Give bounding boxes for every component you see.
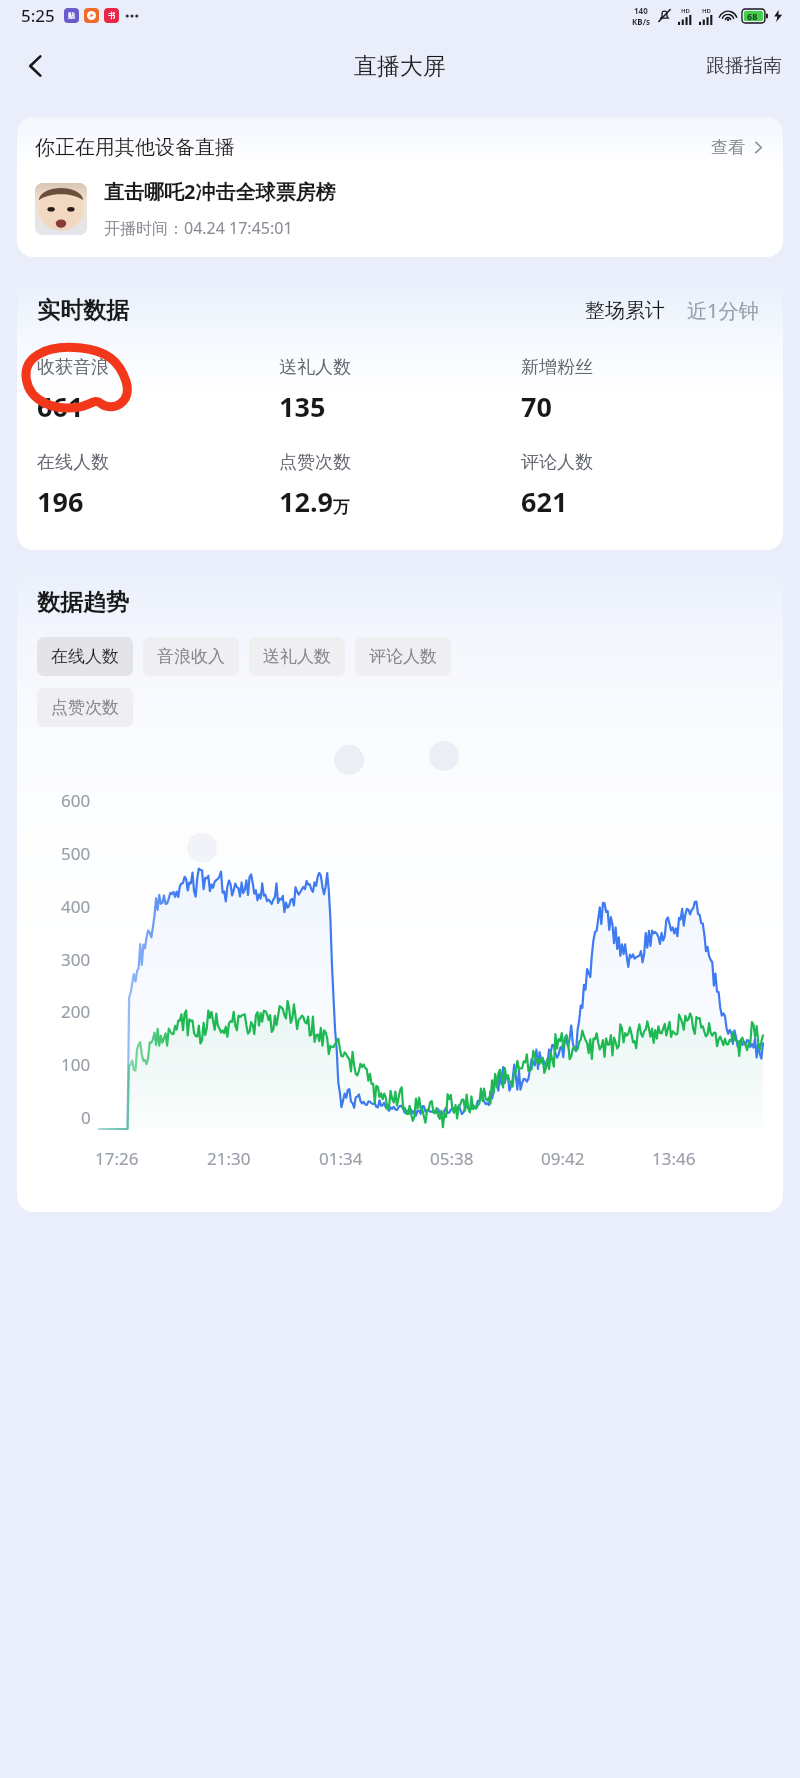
- staticText: 17:26: [95, 1147, 139, 1170]
- staticText: 送礼人数: [279, 356, 351, 379]
- button[interactable]: 在线人数: [37, 637, 133, 676]
- staticText: 621: [521, 483, 568, 520]
- button[interactable]: 近1分钟: [683, 293, 763, 328]
- button[interactable]: 点赞次数: [37, 688, 133, 727]
- staticText: 100: [61, 1053, 91, 1076]
- staticText: 13:46: [652, 1147, 696, 1170]
- staticText: 送礼人数: [263, 646, 331, 667]
- staticText: 661: [37, 388, 84, 425]
- staticText: 查看: [711, 137, 745, 158]
- staticText: 600: [61, 789, 91, 812]
- button[interactable]: 整场累计: [581, 294, 669, 327]
- staticText: 09:42: [541, 1147, 585, 1170]
- staticText: 评论人数: [369, 646, 437, 667]
- staticText: 万: [333, 497, 350, 518]
- staticText: 12.9: [279, 483, 333, 520]
- staticText: 新增粉丝: [521, 356, 593, 379]
- staticText: 整场累计: [585, 298, 665, 323]
- staticText: 直击哪吒2冲击全球票房榜: [104, 178, 336, 205]
- staticText: HD: [681, 7, 690, 15]
- staticText: 70: [521, 388, 552, 425]
- button[interactable]: 跟播指南: [688, 44, 800, 88]
- staticText: 贴: [68, 11, 75, 20]
- staticText: 跟播指南: [706, 54, 782, 78]
- button[interactable]: 评论人数: [355, 637, 451, 676]
- staticText: 直播大屏: [354, 52, 446, 81]
- staticText: 68: [747, 10, 758, 22]
- button[interactable]: 返回: [8, 38, 64, 94]
- staticText: 400: [61, 895, 91, 918]
- staticText: KB/s: [632, 16, 650, 27]
- staticText: 500: [61, 842, 91, 865]
- staticText: 音浪收入: [157, 646, 225, 667]
- staticText: 书: [108, 11, 115, 20]
- staticText: 在线人数: [51, 646, 119, 667]
- staticText: 你正在用其他设备直播: [35, 135, 235, 160]
- staticText: 近1分钟: [687, 297, 759, 324]
- staticText: 135: [279, 388, 326, 425]
- staticText: 05:38: [430, 1147, 474, 1170]
- staticText: 140: [634, 5, 648, 16]
- staticText: 数据趋势: [37, 588, 129, 617]
- staticText: 300: [61, 948, 91, 971]
- staticText: 点赞次数: [279, 451, 351, 474]
- staticText: 5:25: [21, 4, 55, 27]
- button[interactable]: 你正在用其他设备直播: [17, 117, 783, 257]
- staticText: 0: [81, 1106, 91, 1129]
- staticText: 点赞次数: [51, 697, 119, 718]
- staticText: HD: [702, 7, 711, 15]
- staticText: 21:30: [207, 1147, 251, 1170]
- staticText: 评论人数: [521, 451, 593, 474]
- button[interactable]: 音浪收入: [143, 637, 239, 676]
- staticText: 开播时间：04.24 17:45:01: [104, 217, 293, 239]
- staticText: 200: [61, 1000, 91, 1023]
- staticText: 收获音浪: [37, 356, 109, 379]
- staticText: 在线人数: [37, 451, 109, 474]
- staticText: 实时数据: [37, 296, 129, 325]
- button[interactable]: 送礼人数: [249, 637, 345, 676]
- staticText: 196: [37, 483, 84, 520]
- staticText: 01:34: [319, 1147, 363, 1170]
